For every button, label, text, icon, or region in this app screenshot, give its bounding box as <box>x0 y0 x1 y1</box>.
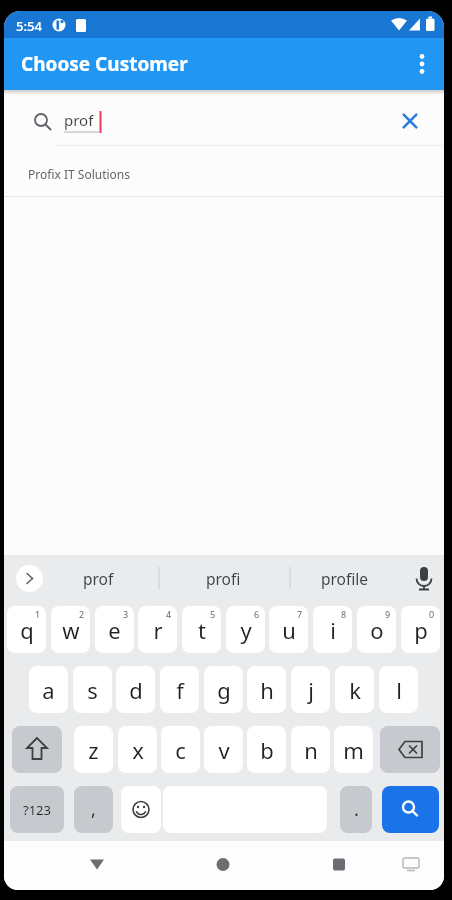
button[interactable] <box>12 726 62 773</box>
staticText: b <box>260 735 274 765</box>
staticText: 6 <box>254 608 260 620</box>
button[interactable]: Profix IT Solutions <box>4 152 444 196</box>
staticText: prof <box>64 110 94 130</box>
button[interactable]: x <box>118 726 157 773</box>
staticText: e <box>108 615 121 645</box>
button[interactable]: ?123 <box>10 786 64 833</box>
button[interactable]: b <box>247 726 286 773</box>
button[interactable] <box>121 786 161 833</box>
button[interactable]: w <box>51 606 90 653</box>
button[interactable]: e <box>95 606 134 653</box>
button[interactable] <box>319 845 359 885</box>
staticText: 1 <box>35 608 41 620</box>
staticText: r <box>153 615 163 645</box>
staticText: h <box>260 675 274 705</box>
staticText: 5:54 <box>16 17 42 35</box>
button[interactable] <box>380 726 440 773</box>
staticText: 8 <box>341 608 347 620</box>
staticText: p <box>414 615 428 645</box>
button[interactable]: l <box>379 666 418 713</box>
staticText: prof <box>83 568 114 589</box>
staticText: v <box>218 735 230 765</box>
button[interactable] <box>77 845 117 885</box>
button[interactable]: u <box>269 606 308 653</box>
button[interactable]: prof <box>4 95 444 145</box>
staticText: ?123 <box>23 801 51 819</box>
staticText: x <box>132 735 144 765</box>
button[interactable]: g <box>204 666 243 713</box>
staticText: o <box>370 615 384 645</box>
staticText: t <box>198 615 206 645</box>
button[interactable]: h <box>247 666 286 713</box>
staticText: d <box>129 675 143 705</box>
button[interactable]: f <box>160 666 199 713</box>
staticText: 4 <box>166 608 172 620</box>
staticText: c <box>175 735 186 765</box>
button[interactable]: i <box>313 606 352 653</box>
button[interactable] <box>16 565 43 592</box>
button[interactable]: s <box>73 666 112 713</box>
staticText: z <box>88 735 99 765</box>
button[interactable]: t <box>182 606 221 653</box>
staticText: m <box>343 735 364 765</box>
staticText: 9 <box>385 608 391 620</box>
button[interactable]: a <box>29 666 68 713</box>
button[interactable]: . <box>340 786 372 833</box>
button[interactable]: y <box>226 606 265 653</box>
staticText: profile <box>321 568 369 589</box>
staticText: k <box>349 675 361 705</box>
staticText: 2 <box>79 608 85 620</box>
button[interactable]: r <box>138 606 177 653</box>
staticText: . <box>354 797 359 822</box>
staticText: i <box>330 615 336 645</box>
staticText: n <box>304 735 318 765</box>
staticText: 3 <box>123 608 129 620</box>
button[interactable]: k <box>335 666 374 713</box>
button[interactable]: n <box>291 726 330 773</box>
button[interactable]: prof <box>58 564 138 592</box>
button[interactable]: m <box>334 726 373 773</box>
button[interactable]: j <box>291 666 330 713</box>
staticText: q <box>20 615 34 645</box>
button[interactable]: p <box>401 606 440 653</box>
staticText: , <box>91 797 96 822</box>
staticText: u <box>282 615 296 645</box>
staticText: a <box>42 675 55 705</box>
staticText: 5 <box>210 608 216 620</box>
button[interactable]: d <box>116 666 155 713</box>
staticText: l <box>396 675 402 705</box>
staticText: Profix IT Solutions <box>28 166 131 182</box>
staticText: w <box>62 615 80 645</box>
staticText: profi <box>206 568 241 589</box>
staticText: 0 <box>429 608 435 620</box>
button[interactable] <box>203 845 243 885</box>
button[interactable]: v <box>204 726 243 773</box>
button[interactable]: o <box>357 606 396 653</box>
staticText: s <box>87 675 98 705</box>
staticText: y <box>240 615 252 645</box>
staticText: 7 <box>297 608 303 620</box>
button[interactable]: q <box>7 606 46 653</box>
button[interactable]: z <box>74 726 113 773</box>
button[interactable] <box>382 786 439 833</box>
staticText: j <box>308 675 314 705</box>
button[interactable]: profile <box>305 564 385 592</box>
staticText: Choose Customer <box>21 51 188 77</box>
staticText: f <box>176 675 184 705</box>
button[interactable] <box>404 44 444 84</box>
button[interactable]: profi <box>183 564 263 592</box>
button[interactable]: , <box>74 786 113 833</box>
staticText: g <box>217 675 231 705</box>
button[interactable]: c <box>161 726 200 773</box>
